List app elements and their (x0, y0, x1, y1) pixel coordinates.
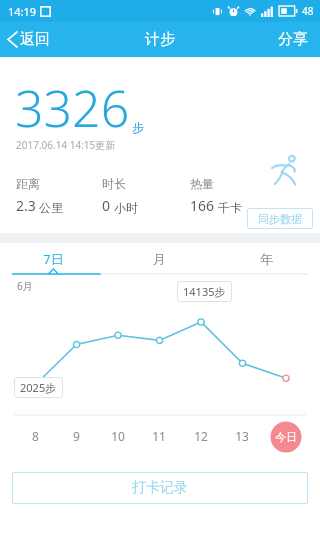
staticText: 11 (152, 428, 166, 444)
button[interactable]: 年 (213, 243, 320, 275)
staticText: 时长 (102, 176, 126, 191)
staticText: 千卡 (218, 200, 242, 215)
staticText: 14135步 (183, 284, 226, 299)
staticText: 14:19 (8, 4, 37, 19)
staticText: 10 (111, 428, 125, 444)
button[interactable]: 返回 (0, 26, 60, 53)
staticText: 月 (153, 251, 166, 267)
staticText: 打卡记录 (132, 479, 188, 497)
staticText: 6月 (17, 279, 33, 293)
staticText: 公里 (39, 200, 63, 215)
staticText: 13 (235, 428, 249, 444)
staticText: 返回 (20, 30, 50, 49)
staticText: 12 (194, 428, 208, 444)
staticText: 小时 (114, 200, 138, 215)
button[interactable]: 7日 (0, 243, 106, 275)
staticText: 9 (73, 428, 80, 444)
staticText: 8 (32, 428, 39, 444)
staticText: 年 (260, 251, 273, 267)
button[interactable]: 分享 (266, 24, 320, 55)
staticText: 计步 (145, 30, 175, 49)
staticText: 今日 (275, 430, 297, 444)
staticText: 0 (102, 196, 111, 215)
staticText: 2017.06.14 14:15更新 (16, 138, 116, 152)
staticText: 2.3 (16, 196, 36, 215)
staticText: 7日 (43, 250, 64, 268)
button[interactable]: 打卡记录 (12, 472, 308, 504)
staticText: 步 (132, 120, 144, 135)
staticText: 166 (190, 196, 215, 215)
staticText: 48 (302, 4, 314, 18)
staticText: 2025步 (20, 380, 57, 395)
staticText: 距离 (16, 176, 40, 191)
button[interactable]: 月 (106, 243, 213, 275)
staticText: 同步数据 (258, 212, 302, 226)
staticText: 3326 (15, 74, 130, 142)
button[interactable]: 同步数据 (247, 208, 313, 229)
staticText: 热量 (190, 176, 214, 191)
button[interactable]: 今日 (270, 421, 302, 453)
